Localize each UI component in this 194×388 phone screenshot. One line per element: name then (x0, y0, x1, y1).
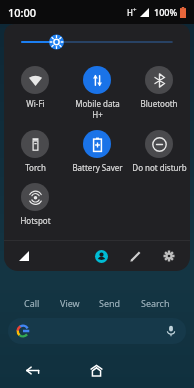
button[interactable]: Call (22, 295, 42, 311)
button[interactable]: Brightness (4, 24, 190, 60)
staticText: Send (99, 297, 121, 309)
button[interactable]: Settings (158, 245, 180, 267)
button[interactable]: User (90, 245, 112, 267)
staticText: H (127, 7, 133, 18)
button[interactable]: Bluetooth (128, 64, 190, 111)
button[interactable]: Mobile data (66, 64, 128, 122)
button[interactable]: Back (0, 356, 64, 384)
staticText: 100% (154, 6, 178, 18)
staticText: Search (141, 297, 170, 309)
staticText: Do not disturb (132, 162, 187, 173)
staticText: Hotspot (20, 215, 51, 226)
other: Voice search (165, 318, 177, 344)
staticText: Call (24, 297, 40, 309)
staticText: View (60, 297, 80, 309)
button[interactable]: Voice search (8, 318, 186, 344)
button[interactable]: View (58, 295, 82, 311)
staticText: H+ (92, 109, 103, 120)
staticText: 10:00 (8, 5, 37, 20)
button[interactable]: Send (97, 295, 123, 311)
button[interactable]: Do not disturb (128, 128, 190, 175)
button[interactable]: Edit (124, 245, 146, 267)
staticText: Wi-Fi (26, 98, 45, 109)
button[interactable]: Torch (4, 128, 66, 175)
button[interactable]: Battery Saver (66, 128, 128, 175)
button[interactable]: Hotspot (4, 181, 66, 228)
staticText: Bluetooth (140, 98, 178, 109)
staticText: + (133, 6, 137, 14)
staticText: Torch (25, 162, 46, 173)
button[interactable]: Home (64, 356, 129, 384)
button[interactable]: Search (139, 295, 172, 311)
staticText: Battery Saver (72, 162, 123, 173)
staticText: Mobile data (75, 98, 120, 109)
button[interactable]: Wi-Fi (4, 64, 66, 111)
button[interactable]: Expand (14, 246, 34, 266)
